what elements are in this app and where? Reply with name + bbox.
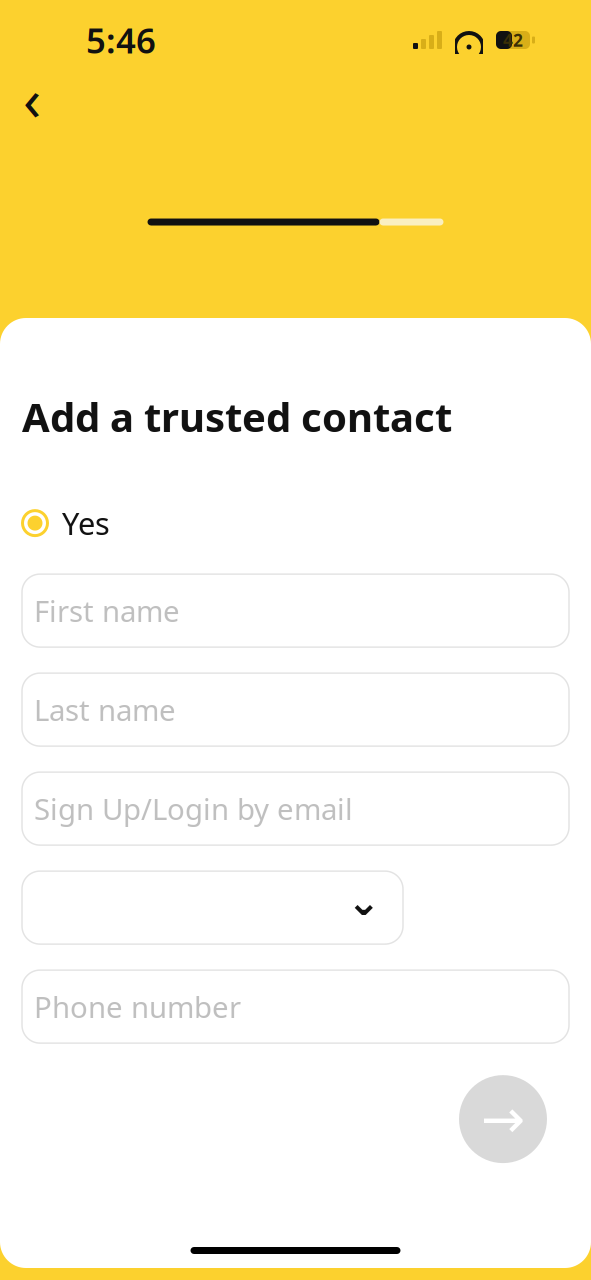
button[interactable]: Select country code [22, 871, 403, 944]
staticText: Sign Up/Login by email [34, 789, 353, 828]
staticText: ⌄ [347, 879, 381, 924]
staticText: Phone number [34, 987, 241, 1026]
button[interactable]: Phone number [22, 970, 569, 1043]
button[interactable]: Sign Up/Login by email [22, 772, 569, 845]
staticText: Add a trusted contact [22, 390, 452, 443]
staticText: 5:46 [86, 17, 156, 63]
staticText: 42 [503, 28, 523, 51]
staticText: Last name [34, 690, 176, 729]
staticText: First name [34, 591, 180, 630]
button[interactable]: First name [22, 574, 569, 647]
button[interactable]: Last name [22, 673, 569, 746]
button[interactable]: Continue [459, 1075, 547, 1163]
staticText: → [480, 1089, 525, 1149]
staticText: ‹ [23, 59, 41, 137]
button[interactable]: Back [8, 74, 56, 122]
button[interactable]: Yes [22, 503, 569, 543]
staticText: Yes [62, 503, 110, 543]
